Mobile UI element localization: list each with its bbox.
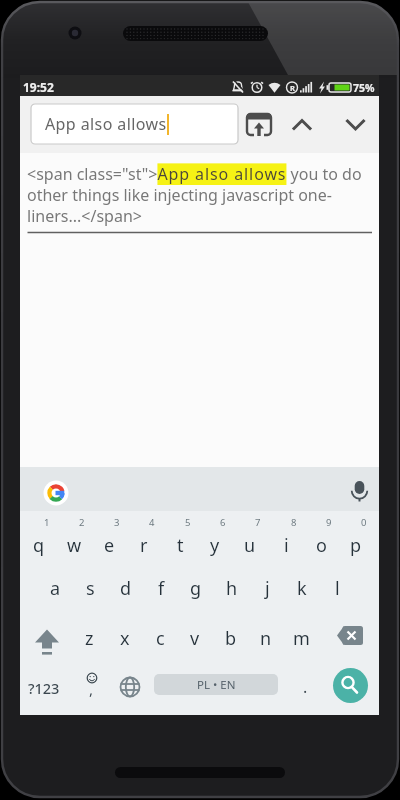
- staticText: App also allows: [45, 113, 167, 135]
- staticText: j: [265, 576, 270, 601]
- button[interactable]: [334, 621, 366, 651]
- staticText: x: [120, 626, 130, 651]
- staticText: b: [225, 626, 237, 651]
- staticText: 5: [185, 516, 191, 529]
- staticText: <span class="st">App also allows you to …: [27, 163, 372, 227]
- staticText: 9: [326, 516, 332, 529]
- staticText: 8: [291, 516, 297, 529]
- staticText: w: [67, 533, 82, 558]
- staticText: q: [33, 533, 45, 558]
- staticText: PL • EN: [197, 677, 236, 693]
- staticText: z: [85, 626, 94, 651]
- button[interactable]: [44, 481, 68, 505]
- button[interactable]: [31, 623, 63, 653]
- staticText: u: [244, 533, 256, 558]
- staticText: c: [156, 626, 165, 651]
- staticText: v: [190, 626, 200, 651]
- staticText: l: [335, 576, 340, 601]
- staticText: 0: [361, 516, 367, 529]
- button[interactable]: [339, 108, 371, 140]
- staticText: ,: [89, 679, 94, 699]
- staticText: g: [190, 576, 202, 601]
- staticText: k: [297, 576, 307, 601]
- button[interactable]: App also allows: [31, 104, 238, 144]
- staticText: h: [226, 576, 238, 601]
- staticText: R: [290, 83, 295, 93]
- staticText: p: [350, 533, 362, 558]
- staticText: m: [293, 626, 310, 651]
- staticText: 4: [149, 516, 155, 529]
- staticText: d: [120, 576, 132, 601]
- button[interactable]: PL • EN: [154, 674, 278, 695]
- staticText: 3: [114, 516, 120, 529]
- button[interactable]: [286, 108, 318, 140]
- button[interactable]: [239, 108, 279, 140]
- staticText: i: [284, 533, 289, 558]
- staticText: 7: [255, 516, 261, 529]
- button[interactable]: [333, 668, 368, 703]
- staticText: .: [303, 676, 308, 698]
- button[interactable]: q: [20, 511, 379, 715]
- staticText: e: [104, 533, 115, 558]
- staticText: s: [86, 576, 95, 601]
- staticText: f: [158, 576, 165, 601]
- staticText: n: [260, 626, 272, 651]
- staticText: ?123: [28, 678, 60, 698]
- staticText: 2: [79, 516, 85, 529]
- button[interactable]: [24, 673, 64, 703]
- staticText: 75%: [353, 81, 375, 95]
- staticText: y: [210, 533, 220, 558]
- staticText: a: [50, 576, 61, 601]
- staticText: 1: [44, 516, 50, 529]
- button[interactable]: [115, 672, 145, 702]
- staticText: r: [140, 533, 148, 558]
- button[interactable]: [347, 477, 373, 505]
- staticText: t: [177, 533, 184, 558]
- staticText: o: [316, 533, 327, 558]
- staticText: 6: [220, 516, 226, 529]
- staticText: 19:52: [23, 79, 54, 95]
